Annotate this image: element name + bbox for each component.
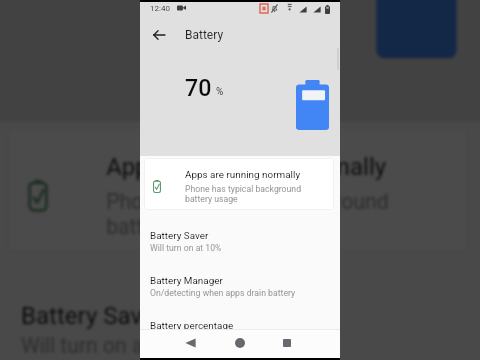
staticText: Will turn on at 10% <box>150 243 222 253</box>
staticText: On/detecting when apps drain battery <box>150 288 296 298</box>
button[interactable]: Recent apps <box>276 333 298 352</box>
staticText: Battery Manager <box>150 275 223 287</box>
staticText: Apps are running normally <box>106 153 388 182</box>
staticText: Phone has typical background battery usa… <box>185 184 302 204</box>
button[interactable] <box>140 223 340 262</box>
staticText: Battery Saver <box>21 302 164 331</box>
staticText: 70 <box>185 74 212 101</box>
staticText: Phone has typical background battery usa… <box>106 190 391 238</box>
staticText: Battery Saver <box>150 230 209 242</box>
button[interactable] <box>140 314 340 329</box>
button[interactable] <box>6 126 469 253</box>
staticText: Apps are running normally <box>185 169 301 181</box>
button[interactable]: Home <box>229 333 251 352</box>
button[interactable]: Back <box>179 333 202 352</box>
button[interactable] <box>144 158 334 210</box>
staticText: Will turn on at 10% <box>21 333 196 358</box>
staticText: Battery <box>185 28 224 42</box>
staticText: 12:40 <box>150 4 170 13</box>
button[interactable]: Back <box>147 23 170 46</box>
button[interactable] <box>140 268 340 308</box>
button[interactable] <box>0 285 480 360</box>
staticText: Battery percentage <box>150 320 234 329</box>
staticText: % <box>216 86 224 98</box>
